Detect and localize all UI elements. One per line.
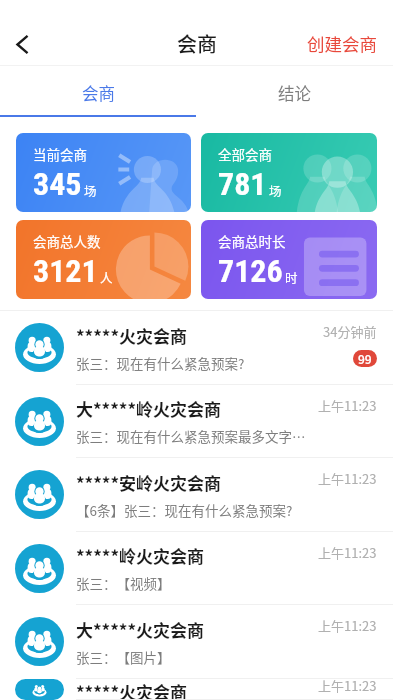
staticText: 会商: [82, 81, 115, 105]
staticText: 【6条】张三：现在有什么紧急预案?: [76, 500, 293, 520]
staticText: 上午11:23: [318, 616, 377, 635]
button[interactable]: *****火灾会商: [0, 679, 393, 700]
button[interactable]: Back: [1, 23, 41, 63]
staticText: 人: [100, 268, 113, 286]
staticText: 上午11:23: [318, 543, 377, 562]
staticText: 会商总人数: [33, 231, 101, 251]
staticText: 上午11:23: [318, 469, 377, 488]
button[interactable]: 会商总人数: [16, 220, 191, 299]
staticText: *****火灾会商: [76, 679, 188, 700]
staticText: 张三：【视频】: [76, 573, 171, 593]
staticText: 张三：【图片】: [76, 647, 171, 667]
staticText: 全部会商: [218, 144, 272, 164]
button[interactable]: 结论: [196, 66, 393, 117]
staticText: 3121: [33, 252, 98, 290]
button[interactable]: *****安岭火灾会商: [0, 458, 393, 532]
button[interactable]: 会商总时长: [201, 220, 377, 299]
staticText: 当前会商: [33, 144, 87, 164]
button[interactable]: *****岭火灾会商: [0, 532, 393, 605]
button[interactable]: 会商: [0, 66, 196, 117]
staticText: 会商总时长: [218, 231, 286, 251]
staticText: *****岭火灾会商: [76, 543, 205, 568]
button[interactable]: 全部会商: [201, 133, 377, 212]
staticText: 781: [218, 165, 267, 203]
staticText: 上午11:23: [318, 396, 377, 415]
button[interactable]: *****火灾会商: [0, 311, 393, 385]
button[interactable]: 创建会商: [291, 21, 393, 66]
staticText: 7126: [218, 252, 283, 290]
staticText: 345: [33, 165, 82, 203]
staticText: 大*****火灾会商: [76, 617, 205, 642]
staticText: 大*****岭火灾会商: [76, 396, 222, 421]
staticText: *****火灾会商: [76, 323, 188, 348]
staticText: 34分钟前: [323, 322, 377, 341]
staticText: 结论: [278, 81, 311, 105]
staticText: 99: [358, 350, 372, 367]
staticText: 张三：现在有什么紧急预案?: [76, 353, 245, 373]
button[interactable]: 当前会商: [16, 133, 191, 212]
staticText: *****安岭火灾会商: [76, 470, 222, 495]
staticText: 场: [269, 181, 282, 199]
staticText: 时: [285, 268, 298, 286]
button[interactable]: 大*****岭火灾会商: [0, 385, 393, 458]
staticText: 张三：现在有什么紧急预案最多文字最多…: [76, 426, 312, 446]
button[interactable]: 大*****火灾会商: [0, 605, 393, 679]
staticText: 会商: [177, 29, 217, 58]
staticText: 上午11:23: [318, 676, 377, 695]
staticText: 创建会商: [307, 31, 377, 56]
staticText: 场: [84, 181, 97, 199]
